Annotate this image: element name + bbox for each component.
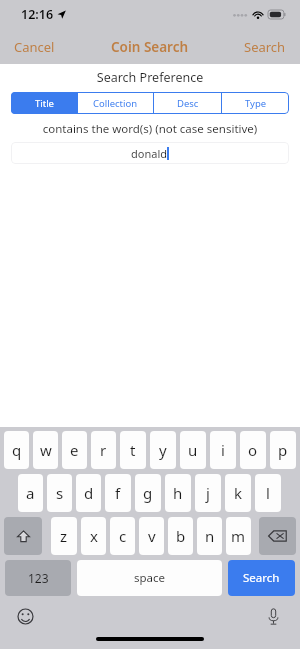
button[interactable]: k (225, 474, 251, 512)
button[interactable]: Desc (154, 92, 221, 114)
staticText: a (26, 483, 35, 503)
staticText: s (56, 483, 64, 503)
staticText: o (248, 440, 258, 460)
button[interactable]: w (33, 431, 58, 469)
staticText: e (70, 440, 79, 460)
staticText: d (84, 483, 94, 503)
staticText: t (130, 440, 136, 460)
button[interactable]: q (4, 431, 29, 469)
button[interactable]: Search (228, 560, 295, 596)
button[interactable]: Delete (259, 517, 296, 555)
staticText: u (188, 440, 198, 460)
staticText: Search (243, 570, 280, 586)
staticText: l (266, 483, 270, 503)
staticText: x (90, 526, 98, 546)
button[interactable]: c (110, 517, 135, 555)
button[interactable]: i (210, 431, 236, 469)
button[interactable]: j (195, 474, 221, 512)
button[interactable]: Search (238, 35, 292, 59)
button[interactable]: d (76, 474, 101, 512)
button[interactable]: a (18, 474, 43, 512)
staticText: contains the word(s) (not case sensitive… (0, 121, 300, 137)
staticText: z (60, 526, 68, 546)
button[interactable]: space (77, 560, 222, 596)
staticText: Cancel (14, 38, 55, 56)
staticText: f (115, 483, 121, 503)
staticText: g (143, 483, 153, 503)
button[interactable]: g (135, 474, 161, 512)
staticText: r (100, 440, 107, 460)
staticText: j (206, 483, 210, 503)
button[interactable]: e (62, 431, 87, 469)
button[interactable]: Type (222, 92, 289, 114)
button[interactable]: f (105, 474, 131, 512)
staticText: v (148, 526, 156, 546)
button[interactable]: p (270, 431, 296, 469)
button[interactable]: donald (11, 142, 289, 164)
staticText: Type (245, 97, 267, 110)
button[interactable]: z (51, 517, 77, 555)
button[interactable]: Collection (78, 92, 153, 114)
staticText: Desc (177, 97, 199, 110)
staticText: c (119, 526, 127, 546)
button[interactable]: Dictation (262, 605, 284, 627)
button[interactable]: l (255, 474, 281, 512)
button[interactable]: h (165, 474, 191, 512)
staticText: Search Preference (0, 69, 300, 86)
staticText: p (278, 440, 288, 460)
staticText: Search (244, 38, 286, 56)
staticText: Collection (93, 97, 138, 110)
staticText: Title (35, 97, 54, 110)
button[interactable]: s (47, 474, 72, 512)
button[interactable]: Cancel (8, 35, 61, 59)
button[interactable]: o (240, 431, 266, 469)
button[interactable]: y (150, 431, 176, 469)
staticText: k (234, 483, 243, 503)
staticText: m (231, 526, 246, 546)
button[interactable]: n (197, 517, 222, 555)
button[interactable]: r (91, 431, 116, 469)
staticText: h (173, 483, 183, 503)
staticText: q (12, 440, 22, 460)
staticText: i (221, 440, 225, 460)
button[interactable]: Emoji keyboard (14, 605, 36, 627)
staticText: w (40, 440, 52, 460)
staticText: b (176, 526, 186, 546)
staticText: y (159, 440, 167, 460)
staticText: 123 (28, 570, 49, 586)
button[interactable]: v (139, 517, 164, 555)
button[interactable]: m (226, 517, 251, 555)
staticText: n (205, 526, 215, 546)
button[interactable]: 123 (5, 560, 71, 596)
button[interactable]: u (180, 431, 206, 469)
button[interactable]: x (81, 517, 106, 555)
button[interactable]: t (120, 431, 146, 469)
staticText: 12:16 (21, 6, 54, 23)
button[interactable]: Coin Search (105, 35, 195, 59)
staticText: space (134, 570, 166, 586)
button[interactable]: Title (11, 92, 77, 114)
staticText: donald (131, 146, 167, 161)
button[interactable]: Shift (4, 517, 42, 555)
staticText: Coin Search (111, 38, 189, 56)
button[interactable]: b (168, 517, 193, 555)
